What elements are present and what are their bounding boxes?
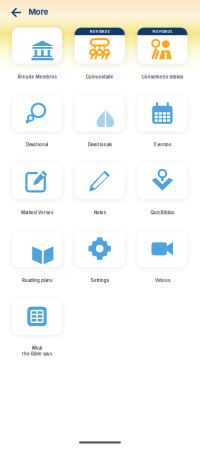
staticText: Devotionals — [88, 142, 112, 147]
button[interactable]: Eventos — [127, 95, 197, 147]
staticText: Videos — [155, 278, 170, 283]
staticText: NOVIDADE — [152, 29, 172, 34]
button[interactable]: Área de Membros — [2, 28, 72, 80]
button[interactable]: What — [2, 299, 72, 356]
staticText: Notes — [94, 210, 106, 215]
button[interactable]: Marked Verses — [2, 163, 72, 215]
staticText: Comunidade — [86, 74, 114, 80]
button[interactable]: Videos — [127, 231, 197, 283]
staticText: Reading plans — [22, 278, 52, 283]
button[interactable]: NOVIDADE — [127, 28, 197, 80]
staticText: the Bible says — [22, 351, 52, 357]
button[interactable]: Devotionals — [65, 95, 135, 147]
button[interactable]: Reading plans — [2, 231, 72, 283]
button[interactable]: Back — [6, 3, 25, 22]
staticText: Área de Membros — [17, 74, 56, 80]
staticText: Marked Verses — [21, 210, 53, 215]
staticText: Eventos — [154, 142, 171, 147]
staticText: Settings — [91, 278, 109, 283]
button[interactable]: Settings — [65, 231, 135, 283]
staticText: What — [31, 346, 42, 351]
staticText: Quiz Bíblico — [150, 210, 174, 215]
staticText: Conselheiro Bíblico — [141, 74, 183, 80]
staticText: Devotional — [26, 142, 48, 147]
button[interactable]: Notes — [65, 163, 135, 215]
button[interactable]: NOVIDADE — [65, 28, 135, 80]
button[interactable]: Quiz Bíblico — [127, 163, 197, 215]
button[interactable]: Devotional — [2, 95, 72, 147]
staticText: NOVIDADE — [90, 29, 110, 34]
staticText: More — [29, 7, 49, 17]
